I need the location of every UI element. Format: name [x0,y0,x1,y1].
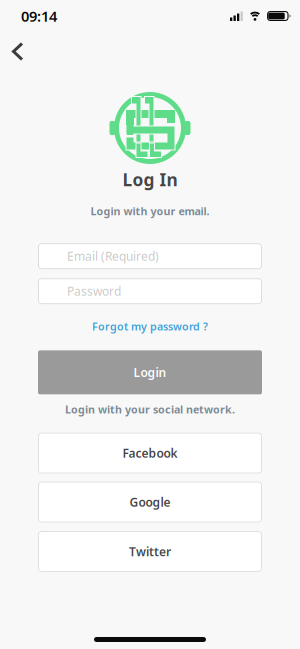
staticText: Google [129,494,170,510]
button[interactable]: Login [38,350,262,394]
button[interactable]: Forgot my password ? [92,319,208,333]
staticText: Log In [122,168,177,191]
staticText: 09:14 [21,6,57,26]
staticText: Email (Required) [67,248,159,264]
staticText: Facebook [122,445,177,461]
staticText: Login [133,364,166,380]
staticText: Forgot my password ? [92,319,208,333]
button[interactable]: Twitter [38,531,262,572]
staticText: Login with your social network. [65,402,235,416]
staticText: Twitter [129,543,171,559]
staticText: Login with your email. [90,204,209,218]
staticText: Password [67,283,121,299]
button[interactable]: Google [38,481,262,522]
button[interactable]: Back [11,42,25,61]
button[interactable]: Facebook [38,432,262,473]
